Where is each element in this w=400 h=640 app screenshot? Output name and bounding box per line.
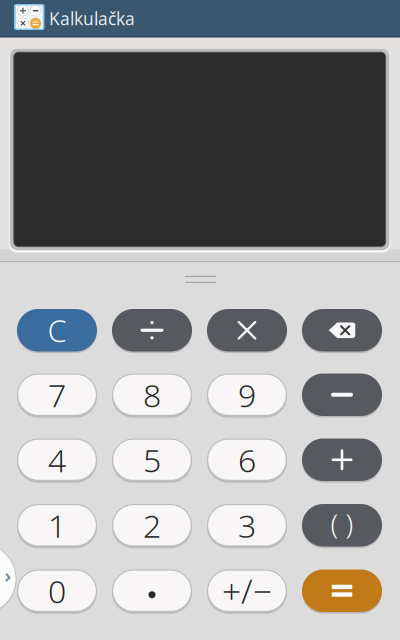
button[interactable]: 1 bbox=[17, 503, 97, 547]
button[interactable]: Divide bbox=[112, 308, 192, 352]
button[interactable]: ( ) bbox=[302, 503, 382, 547]
staticText: 5 bbox=[143, 438, 161, 481]
staticText: +/− bbox=[222, 569, 272, 613]
button[interactable]: 7 bbox=[17, 372, 97, 417]
staticText: 0 bbox=[48, 569, 66, 612]
button[interactable]: 0 bbox=[17, 568, 97, 613]
staticText: 2 bbox=[143, 504, 161, 546]
button[interactable]: Equals bbox=[302, 568, 382, 613]
staticText: C bbox=[47, 310, 66, 351]
button[interactable]: Plus minus bbox=[207, 568, 287, 613]
button[interactable]: Backspace bbox=[302, 308, 382, 352]
button[interactable]: Minus bbox=[302, 372, 382, 417]
staticText: 7 bbox=[48, 373, 66, 416]
staticText: 4 bbox=[48, 438, 66, 481]
button[interactable]: 9 bbox=[207, 372, 287, 417]
staticText: 9 bbox=[238, 373, 256, 416]
button[interactable]: Multiply bbox=[207, 308, 287, 352]
button[interactable]: 8 bbox=[112, 372, 192, 417]
staticText: Kalkulačka bbox=[49, 7, 135, 30]
button[interactable]: 3 bbox=[207, 503, 287, 547]
staticText: ( ) bbox=[330, 505, 353, 542]
button[interactable]: 5 bbox=[112, 437, 192, 482]
button[interactable]: Plus bbox=[302, 437, 382, 482]
staticText: 8 bbox=[143, 373, 161, 416]
staticText: 1 bbox=[48, 504, 66, 546]
button[interactable]: C bbox=[17, 308, 97, 352]
button[interactable]: 6 bbox=[207, 437, 287, 482]
staticText: 6 bbox=[238, 438, 256, 481]
button[interactable]: Decimal point bbox=[112, 568, 192, 613]
button[interactable]: 4 bbox=[17, 437, 97, 482]
button[interactable]: 2 bbox=[112, 503, 192, 547]
staticText: 3 bbox=[238, 504, 256, 546]
